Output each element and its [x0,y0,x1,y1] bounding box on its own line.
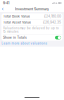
button[interactable]: Total Book Value [1,13,63,19]
button[interactable]: Show in Totals [1,35,63,41]
staticText: Total Asset Value [3,20,31,24]
staticText: Valuations may be delayed by up to 15 mi… [3,26,59,33]
staticText: £26,942.35 [43,20,61,24]
button[interactable]: Total Asset Value [1,19,63,25]
staticText: Learn more about valuations [1,42,47,45]
button[interactable]: Learn more about valuations [0,41,49,47]
staticText: Show in Totals [3,36,27,40]
button[interactable]: Valuations may be delayed by up to 15 mi… [1,25,63,34]
staticText: Investment Summary [15,7,49,11]
staticText: £24,180.00 [44,14,61,18]
staticText: Total Book Value [3,14,30,18]
staticText: 9:41 [3,1,9,5]
button[interactable]: Back [0,6,6,12]
